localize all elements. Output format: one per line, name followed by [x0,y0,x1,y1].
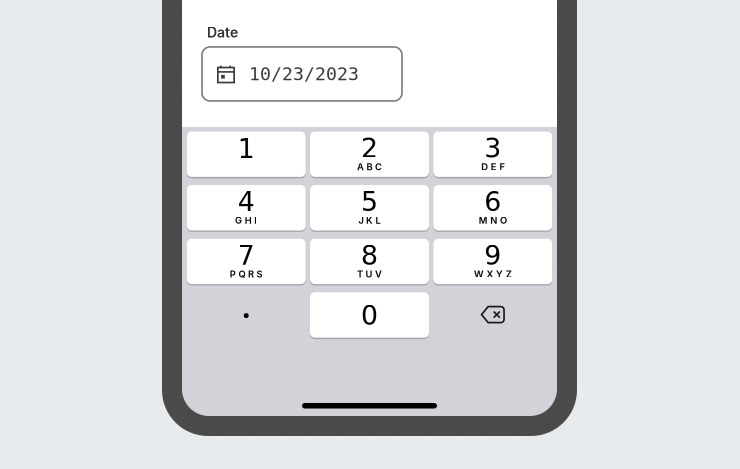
button[interactable]: 2 [310,132,429,178]
button[interactable]: 6 [433,186,552,231]
staticText: 5 [361,186,378,217]
button[interactable]: Decimal point [187,293,306,338]
staticText: ABC [357,161,382,172]
staticText: 6 [484,186,501,217]
button[interactable]: 8 [310,239,429,285]
staticText: 10/23/2023 [249,63,359,84]
staticText: WXYZ [474,268,512,280]
button[interactable]: 10/23/2023 [202,47,402,101]
staticText: 9 [484,240,501,271]
staticText: 1 [238,133,255,164]
button[interactable]: 3 [433,132,552,178]
button[interactable]: 5 [310,186,429,231]
staticText: PQRS [230,268,263,280]
staticText: GHI [235,215,257,226]
staticText: Date [207,24,238,41]
staticText: 4 [238,186,255,217]
staticText: 0 [361,300,378,331]
staticText: MNO [479,215,507,226]
button[interactable]: Delete [433,293,552,338]
button[interactable]: 1 [187,132,306,178]
staticText: 3 [484,133,501,164]
staticText: 8 [361,240,378,271]
staticText: DEF [481,161,504,172]
staticText: 7 [238,240,255,271]
staticText: TUV [357,268,382,280]
staticText: 2 [361,133,378,164]
button[interactable]: 9 [433,239,552,285]
button[interactable]: 4 [187,186,306,231]
button[interactable]: 0 [310,293,429,338]
button[interactable]: 7 [187,239,306,285]
staticText: JKL [358,215,381,226]
